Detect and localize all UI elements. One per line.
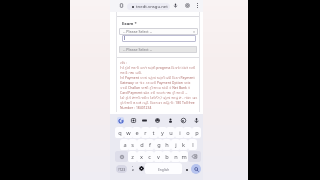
button[interactable]: English [145,163,182,174]
button[interactable]: Voice input [193,117,200,124]
staticText: g [157,141,161,149]
button[interactable]: e [132,127,141,138]
staticText: (૩) ફોર્મ છેલ્લી તારીખ (૩૦/૦૬) પહેલાં ભર… [120,95,198,105]
staticText: e [135,129,139,137]
button[interactable]: Home [118,2,125,9]
button[interactable]: b [162,151,171,162]
staticText: v [157,153,160,161]
staticText: Number : 18401234 [120,105,152,110]
staticText: (૨) Payment કરતાં પહેલાં જરૂરી બધી વિગત … [120,75,198,95]
button[interactable]: -- Please Select -- [119,28,198,35]
button[interactable]: y [158,127,167,138]
staticText: નોંધ : [120,60,128,65]
button[interactable]: q [115,127,124,138]
button[interactable]: Comma [128,163,137,174]
button[interactable]: c [145,151,154,162]
button[interactable]: n [171,151,180,162]
button[interactable]: Themes [180,117,187,124]
staticText: r [144,129,147,137]
staticText: y [161,129,164,137]
button[interactable] [122,35,196,42]
staticText: Exam * [122,21,137,27]
button[interactable]: Shift [115,151,128,162]
button[interactable]: r [141,127,150,138]
staticText: c [148,153,151,161]
staticText: o [186,129,190,137]
button[interactable]: Voice search [172,2,179,9]
staticText: m [181,153,187,161]
button[interactable]: l [188,139,197,150]
staticText: ?123 [118,167,126,171]
button[interactable]: -- Please Select -- [119,46,197,53]
button[interactable]: Backspace [188,151,201,162]
staticText: (૧) ફોર્મ ભરતી વખતે જરૂરી progress વિગતો… [120,65,198,75]
button[interactable]: Period [182,163,191,174]
button[interactable]: k [179,139,188,150]
staticText: -- Please Select -- [123,47,153,52]
staticText: x [140,153,143,161]
staticText: tnedt.vnsgu.net [136,4,168,10]
button[interactable]: tnedt.vnsgu.net [127,3,170,10]
staticText: k [182,141,185,149]
button[interactable]: u [166,127,175,138]
staticText: d [140,141,144,149]
staticText: j [175,141,177,149]
staticText: q [118,129,122,137]
staticText: a [123,141,127,149]
button[interactable]: m [179,151,188,162]
button[interactable]: More options [194,2,200,8]
button[interactable]: Switch tabs [184,2,191,9]
button[interactable]: a [120,139,129,150]
staticText: u [169,129,173,137]
button[interactable]: o [183,127,192,138]
button[interactable]: p [192,127,201,138]
staticText: h [165,141,169,149]
button[interactable]: Emoji [137,163,146,174]
button[interactable]: j [171,139,180,150]
staticText: z [131,153,134,161]
staticText: -- Please Select -- [123,29,153,34]
button[interactable]: v [154,151,163,162]
button[interactable]: h [162,139,171,150]
staticText: w [126,129,131,137]
button[interactable]: Stickers [154,117,161,124]
button[interactable]: GIF [141,117,148,124]
button[interactable]: Google search [117,117,124,124]
button[interactable]: g [154,139,163,150]
staticText: b [165,153,169,161]
button[interactable]: x [137,151,146,162]
button[interactable]: Clipboard [130,117,137,124]
button[interactable]: f [145,139,154,150]
button[interactable]: i [175,127,184,138]
staticText: i [179,129,181,137]
button[interactable]: ?123 [115,163,128,174]
staticText: l [192,141,194,149]
button[interactable]: w [124,127,133,138]
staticText: English [158,167,170,171]
staticText: n [174,153,178,161]
staticText: f [149,141,151,149]
button[interactable]: z [128,151,137,162]
button[interactable]: t [149,127,158,138]
staticText: p [195,129,199,137]
button[interactable]: Translate [167,117,174,124]
button[interactable]: d [137,139,146,150]
button[interactable]: s [128,139,137,150]
button[interactable]: Search [191,164,201,174]
staticText: s [131,141,134,149]
staticText: t [152,129,155,137]
